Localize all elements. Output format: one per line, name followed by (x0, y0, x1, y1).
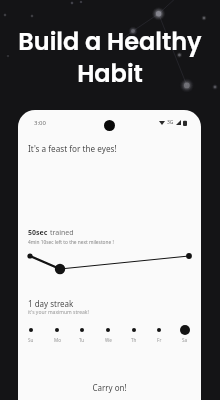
staticText: it's your maximum streak! (28, 309, 89, 316)
staticText: Mo (54, 337, 61, 343)
staticText: Carry on! (18, 382, 201, 393)
staticText: trained (50, 228, 74, 238)
staticText: 50sec (28, 228, 48, 238)
staticText: It's a feast for the eyes! (28, 143, 117, 154)
staticText: Fr (157, 337, 162, 343)
staticText: 1 day streak (28, 298, 74, 309)
staticText: 3G (167, 119, 174, 126)
staticText: We (105, 337, 112, 343)
staticText: 3:00 (34, 119, 46, 127)
staticText: Build a Healthy Habit (0, 25, 220, 91)
staticText: Su (28, 337, 34, 343)
staticText: Th (131, 337, 137, 343)
staticText: 4min 10sec left to the next milestone ! (28, 239, 114, 246)
staticText: Tu (79, 337, 85, 343)
staticText: Sa (182, 337, 188, 343)
